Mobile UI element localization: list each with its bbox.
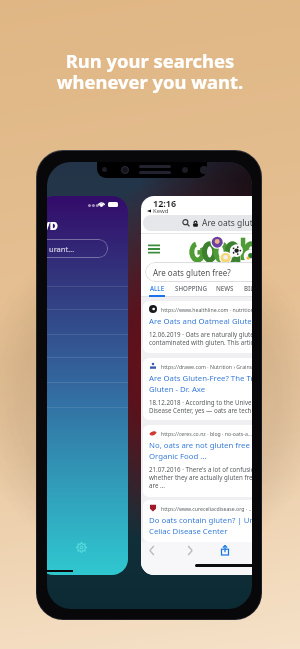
staticText: https://www.healthline.com · nutrition [161, 306, 252, 313]
button[interactable]: Menu [148, 243, 160, 255]
staticText: https://ceres.co.nz · blog · no-oats-a..… [161, 430, 252, 437]
button[interactable]: Back [144, 542, 160, 558]
staticText: No, oats are not gluten free - here's [149, 440, 252, 451]
staticText: Run your searches whenever you want. [0, 48, 300, 95]
staticText: ALLE [150, 284, 165, 292]
staticText: urant... [49, 244, 75, 254]
staticText: are ... [149, 481, 165, 489]
button[interactable]: https://drawe.com · Nutrition › Grains [143, 358, 252, 420]
staticText: Organic Food ... [149, 451, 207, 462]
staticText: Are Oats and Oatmeal Gluten-Free [149, 316, 252, 327]
button[interactable]: https://www.cureceliacdisease.org · ... [143, 500, 252, 542]
staticText: 12.06.2019 · Oats are naturally gluten-f… [149, 330, 252, 338]
button[interactable]: Settings [75, 541, 88, 554]
button[interactable]: https://www.healthline.com · nutrition [143, 301, 252, 353]
staticText: contaminated with gluten. This article e… [149, 338, 252, 346]
button[interactable]: urant... [47, 239, 108, 258]
staticText: Gluten - Dr. Axe [149, 384, 206, 395]
staticText: Celiac Disease Center [149, 526, 228, 537]
staticText: 21.07.2016 · There's a lot of confusion … [149, 465, 252, 473]
staticText: whether they are actually gluten free or [149, 473, 252, 481]
staticText: Are oats gluten free? [202, 217, 252, 229]
staticText: Are oats gluten free? [153, 267, 231, 278]
staticText: /D [47, 218, 58, 233]
button[interactable]: NEWS [215, 283, 235, 293]
button[interactable]: Forward [181, 542, 197, 558]
staticText: 12:16 [153, 197, 177, 209]
staticText: https://www.cureceliacdisease.org · ... [161, 505, 252, 512]
button[interactable]: SHOPPING [174, 283, 208, 293]
button[interactable]: Are oats gluten free? [145, 262, 252, 282]
staticText: SHOPPING [175, 284, 207, 292]
button[interactable]: ALLE [149, 283, 166, 293]
staticText: Are Oats Gluten-Free? The Truth Ab [149, 373, 252, 384]
staticText: https://drawe.com · Nutrition › Grains [161, 363, 252, 370]
staticText: Disease Center, yes — oats are technica [149, 406, 252, 414]
staticText: BIL [244, 284, 252, 292]
staticText: NEWS [216, 284, 234, 292]
staticText: Do oats contain gluten? | University [149, 515, 252, 526]
button[interactable]: Are oats gluten free? [143, 215, 252, 231]
button[interactable]: BIL [243, 283, 252, 293]
button[interactable]: Share [217, 542, 233, 558]
staticText: 18.12.2018 · According to the University [149, 398, 252, 406]
staticText: Kewd [153, 207, 169, 215]
button[interactable]: https://ceres.co.nz · blog · no-oats-a..… [143, 425, 252, 497]
